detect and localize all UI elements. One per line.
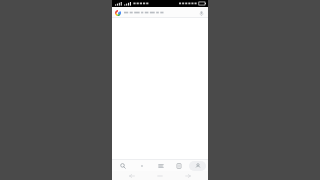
button[interactable]: Discover <box>133 161 150 171</box>
button[interactable]: Collections <box>152 161 169 171</box>
button[interactable]: Voice search <box>197 9 205 17</box>
button[interactable]: Voice search <box>112 7 208 18</box>
button[interactable]: Home <box>152 172 168 180</box>
button[interactable]: Recent <box>170 161 187 171</box>
button[interactable]: Recent apps <box>180 172 196 180</box>
button[interactable]: Back <box>124 172 140 180</box>
button[interactable]: Search <box>114 161 131 171</box>
button[interactable]: Account <box>189 161 206 171</box>
